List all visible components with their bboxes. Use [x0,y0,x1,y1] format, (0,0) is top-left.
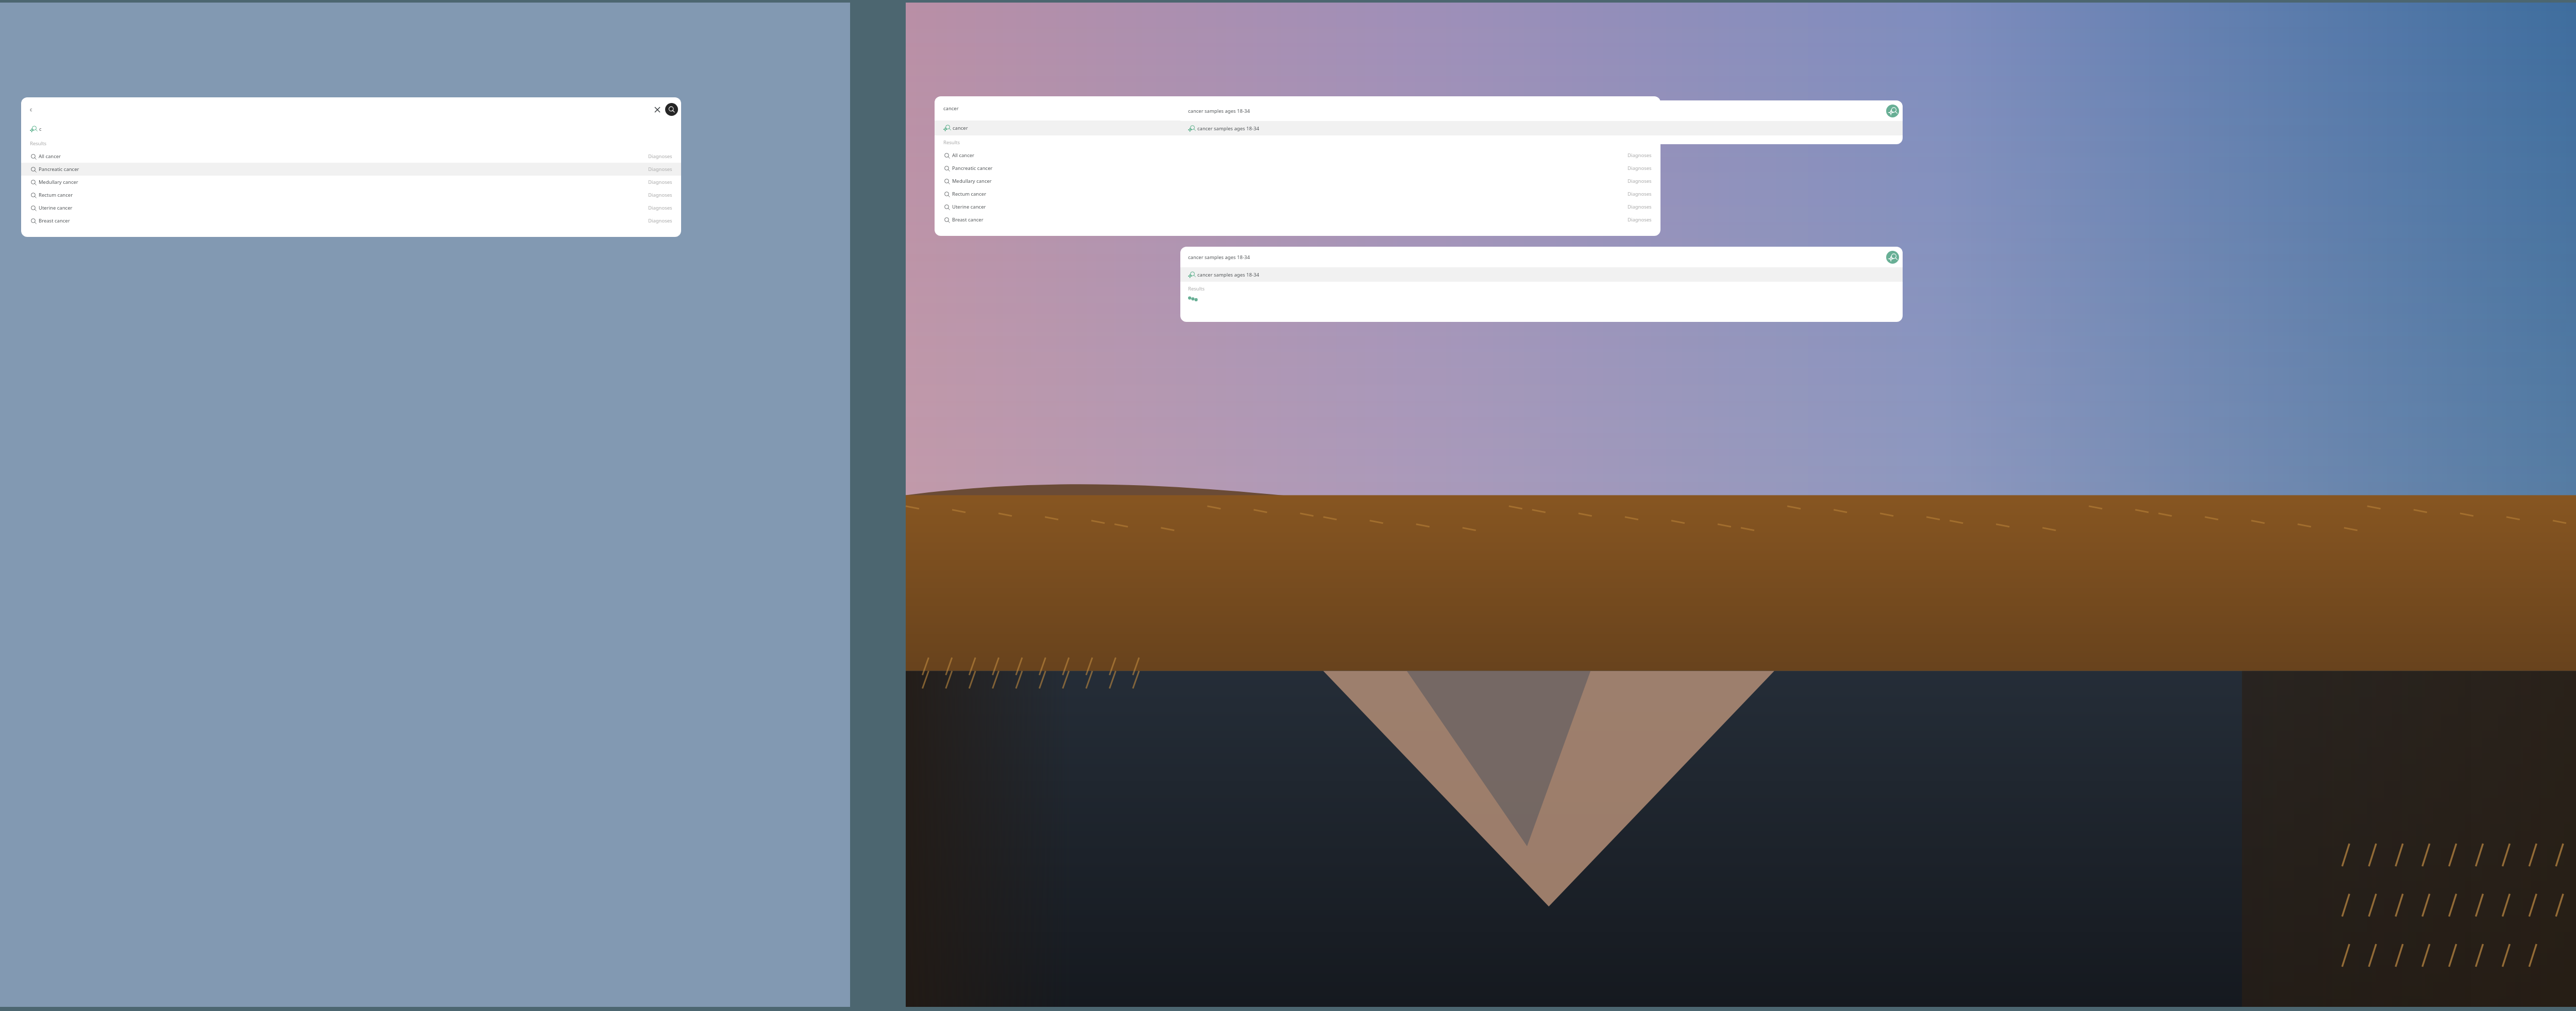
button[interactable]: Medullary cancer [21,176,681,189]
staticText: Pancreatic cancer [952,165,993,172]
button[interactable]: Breast cancer [21,214,681,227]
button[interactable]: Medullary cancer [935,175,1660,187]
staticText: All cancer [952,152,975,159]
button[interactable]: Uterine cancer [21,201,681,214]
button[interactable]: Pancreatic cancer [21,163,681,176]
staticText: Diagnoses [648,192,672,198]
button[interactable]: Rectum cancer [21,189,681,201]
button[interactable]: cancer samples ages 18-34 [1180,121,1903,135]
button[interactable]: cancer [935,121,1660,135]
button[interactable]: Uterine cancer [935,200,1660,213]
staticText: c [30,106,32,113]
button[interactable]: Clear [652,105,663,115]
staticText: Diagnoses [648,217,672,224]
staticText: Rectum cancer [952,191,987,197]
staticText: c [39,126,42,132]
staticText: cancer [943,105,959,112]
staticText: Rectum cancer [39,192,73,198]
staticText: Diagnoses [1628,216,1652,223]
staticText: Diagnoses [648,166,672,173]
button[interactable]: Rectum cancer [935,187,1660,200]
staticText: Pancreatic cancer [39,166,79,173]
staticText: Breast cancer [39,217,70,224]
staticText: Breast cancer [952,216,984,223]
staticText: Diagnoses [1628,178,1652,184]
staticText: Medullary cancer [952,178,992,184]
button[interactable]: AI search [1886,251,1899,264]
button[interactable]: Breast cancer [935,213,1660,226]
staticText: Diagnoses [1628,191,1652,197]
staticText: cancer samples ages 18-34 [1197,125,1259,132]
staticText: All cancer [39,153,61,160]
staticText: Results [1188,285,1205,292]
button[interactable]: AI search [1886,105,1899,117]
button[interactable]: Search [665,103,678,116]
staticText: cancer samples ages 18-34 [1188,254,1250,261]
staticText: Diagnoses [1628,203,1652,210]
staticText: Diagnoses [648,204,672,211]
staticText: cancer samples ages 18-34 [1188,108,1250,114]
staticText: cancer [953,125,968,131]
staticText: Results [30,140,47,147]
staticText: Diagnoses [1628,165,1652,172]
staticText: Diagnoses [1628,152,1652,159]
button[interactable]: c [21,122,681,136]
staticText: Uterine cancer [952,203,986,210]
button[interactable]: All cancer [935,149,1660,162]
button[interactable]: Pancreatic cancer [935,162,1660,175]
staticText: cancer samples ages 18-34 [1197,271,1259,278]
staticText: Uterine cancer [39,204,73,211]
staticText: Diagnoses [648,153,672,160]
staticText: Diagnoses [648,179,672,185]
button[interactable]: cancer samples ages 18-34 [1180,267,1903,282]
staticText: Results [943,139,960,146]
button[interactable]: All cancer [21,150,681,163]
staticText: Medullary cancer [39,179,78,185]
